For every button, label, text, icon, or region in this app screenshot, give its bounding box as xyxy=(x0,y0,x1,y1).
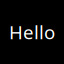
staticText: Hello xyxy=(9,20,55,44)
